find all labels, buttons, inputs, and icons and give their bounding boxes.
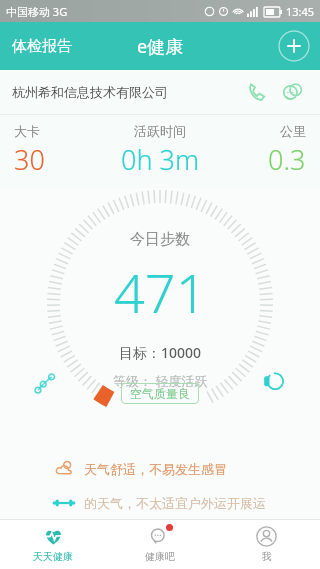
button[interactable]: 体检报告 [0,29,84,64]
staticText: 体检报告 [12,37,72,56]
staticText: 目标：10000 [119,343,202,362]
staticText: 天天健康 [33,550,73,563]
staticText: 公里 [280,123,306,139]
staticText: 我 [262,550,272,563]
staticText: 的天气，不太适宜户外运开展运 [84,495,266,511]
staticText: 中国移动 3G [6,4,68,19]
staticText: 大卡 [14,123,40,139]
staticText: 13:45 [286,4,315,19]
staticText: 空气质量良 [130,386,190,401]
button[interactable]: 公里 [220,123,320,178]
staticText: 471 [114,255,207,329]
button[interactable]: 大卡 [0,123,100,178]
staticText: 天气舒适，不易发生感冒 [84,461,227,477]
staticText: 今日步数 [130,230,190,249]
staticText: 0.3 [268,141,306,178]
button[interactable]: Add [278,30,310,62]
staticText: 等级： 轻度活跃 [113,372,208,390]
button[interactable]: Share [28,366,62,400]
staticText: e健康 [137,34,184,59]
button[interactable]: Call [242,77,272,107]
button[interactable]: 空气质量良 [121,383,199,404]
button[interactable]: 天天健康 [0,519,106,569]
button[interactable]: Device [258,364,292,398]
button[interactable]: 的天气，不太适宜户外运开展运 [0,493,320,513]
staticText: 健康吧 [145,550,175,563]
staticText: 杭州希和信息技术有限公司 [12,84,168,100]
staticText: 活跃时间 [134,123,186,139]
button[interactable]: 活跃时间 [100,123,220,178]
staticText: 0h 3m [121,141,200,178]
button[interactable]: 健康吧 [106,519,213,569]
button[interactable]: Messages [278,77,308,107]
staticText: 30 [14,141,45,178]
button[interactable]: 我 [213,519,320,569]
button[interactable]: 天气舒适，不易发生感冒 [0,459,320,479]
